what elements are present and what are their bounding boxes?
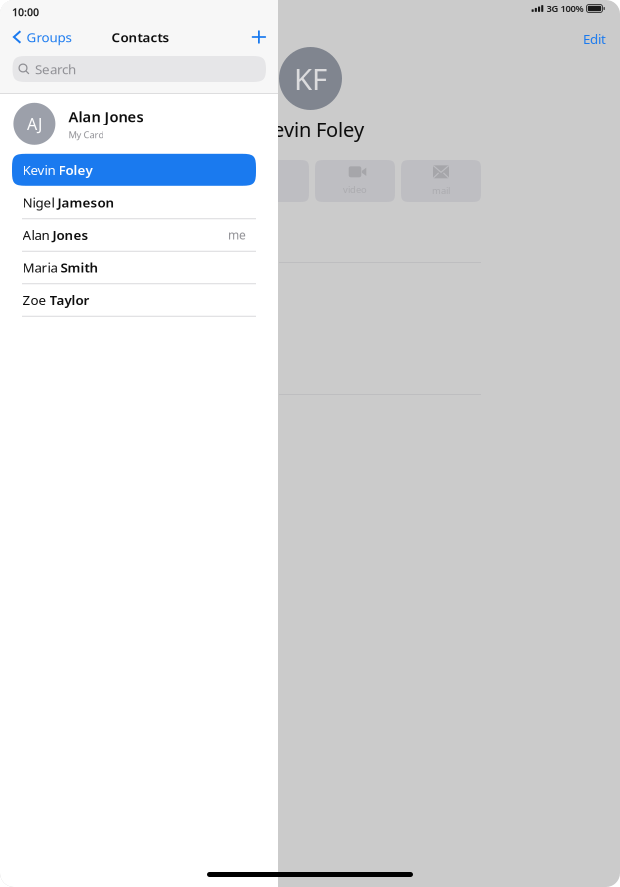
button[interactable]: Groups [0, 25, 72, 49]
staticText: Smith [60, 258, 98, 276]
button[interactable]: Edit [583, 30, 606, 48]
button[interactable]: Nigel [0, 186, 278, 219]
staticText: KF [294, 59, 327, 98]
staticText: mail [432, 184, 450, 197]
staticText: Search [35, 60, 76, 78]
staticText: Alan Jones [68, 107, 143, 126]
staticText: 3G 100% [546, 2, 583, 15]
staticText: My Card [68, 128, 104, 141]
staticText: Kevin [22, 161, 58, 179]
staticText: Kevin Foley [261, 116, 364, 143]
staticText: Maria [22, 258, 60, 276]
staticText: Contacts [112, 28, 170, 46]
staticText: Jones [52, 226, 88, 244]
button[interactable]: Alan [0, 219, 278, 251]
staticText: Jameson [57, 193, 114, 211]
staticText: message [164, 183, 202, 196]
staticText: me [228, 227, 246, 243]
staticText: Alan [22, 226, 52, 244]
button[interactable]: Zoe [0, 284, 278, 316]
button[interactable]: Maria [0, 251, 278, 284]
button[interactable]: message [143, 160, 223, 202]
staticText: 10:00 [12, 5, 39, 19]
button[interactable]: AJ [0, 94, 278, 154]
button[interactable]: mail [401, 160, 481, 202]
button[interactable]: Kevin [0, 154, 278, 186]
button[interactable]: call [229, 160, 309, 202]
staticText: Zoe [22, 291, 49, 309]
staticText: video [343, 183, 367, 196]
staticText: Taylor [49, 291, 89, 309]
staticText: AJ [27, 113, 42, 134]
button[interactable]: video [315, 160, 395, 202]
staticText: Foley [58, 161, 92, 179]
staticText: Groups [27, 28, 72, 46]
staticText: Nigel [22, 193, 57, 211]
button[interactable]: Search [0, 50, 278, 93]
button[interactable]: Add contact [252, 27, 278, 47]
staticText: Edit [583, 30, 606, 48]
